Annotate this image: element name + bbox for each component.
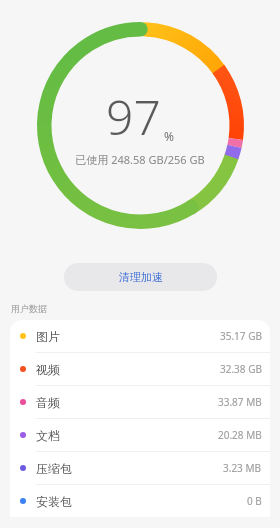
button[interactable]: 图片 <box>10 320 270 352</box>
staticText: 文档 <box>36 428 60 443</box>
button[interactable]: 清理加速 <box>64 263 217 291</box>
staticText: 音频 <box>36 395 60 410</box>
staticText: 安装包 <box>36 494 72 509</box>
staticText: 视频 <box>36 362 60 377</box>
staticText: 用户数据 <box>11 303 47 314</box>
staticText: 97 <box>106 84 161 149</box>
staticText: 20.28 MB <box>218 428 262 442</box>
staticText: 35.17 GB <box>220 329 262 343</box>
button[interactable]: 文档 <box>10 419 270 451</box>
staticText: 0 B <box>247 494 262 508</box>
staticText: 32.38 GB <box>220 362 262 376</box>
staticText: % <box>164 128 174 144</box>
button[interactable]: 压缩包 <box>10 452 270 484</box>
staticText: 清理加速 <box>119 270 163 284</box>
button[interactable]: 安装包 <box>10 485 270 517</box>
staticText: 压缩包 <box>36 461 72 476</box>
staticText: 3.23 MB <box>223 461 262 475</box>
staticText: 图片 <box>36 329 60 344</box>
staticText: 已使用 248.58 GB/256 GB <box>75 152 205 167</box>
button[interactable]: 音频 <box>10 386 270 418</box>
button[interactable]: 视频 <box>10 353 270 385</box>
staticText: 33.87 MB <box>218 395 262 409</box>
